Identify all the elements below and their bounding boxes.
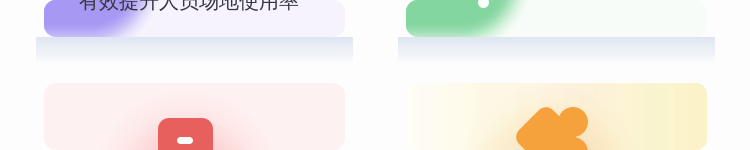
button[interactable] [406, 0, 707, 37]
button[interactable] [406, 83, 707, 150]
button[interactable] [44, 83, 345, 150]
staticText: 有效提升人员场地使用率 [79, 0, 299, 14]
button[interactable]: 有效提升人员场地使用率 [44, 0, 345, 37]
